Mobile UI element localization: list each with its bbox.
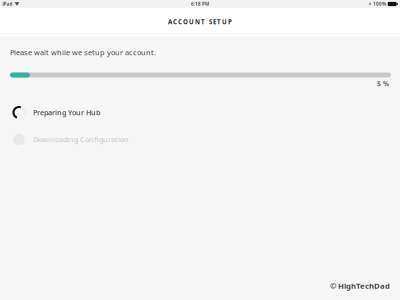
- staticText: Please wait while we setup your account.: [10, 47, 156, 57]
- button[interactable]: Downloading Configuration: [12, 132, 400, 146]
- staticText: A C C O U N T S E T U P: [168, 18, 232, 26]
- button[interactable]: Preparing Your Hub: [12, 105, 400, 119]
- staticText: 5 %: [377, 79, 389, 88]
- staticText: iPad: [2, 1, 12, 7]
- staticText: 100%: [373, 1, 386, 7]
- staticText: 6:18 PM: [191, 1, 209, 7]
- staticText: © HighTechDad: [330, 280, 390, 291]
- staticText: Preparing Your Hub: [33, 108, 100, 117]
- staticText: Downloading Configuration: [33, 135, 129, 144]
